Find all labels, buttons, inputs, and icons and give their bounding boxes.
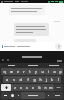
staticText: q — [3, 69, 6, 74]
staticText: p — [59, 69, 62, 74]
button[interactable] — [43, 63, 64, 68]
button[interactable] — [9, 5, 45, 15]
button[interactable]: d — [17, 76, 24, 83]
button[interactable]: t — [27, 68, 33, 75]
button[interactable]: q — [1, 68, 8, 75]
button[interactable]: w — [8, 68, 15, 75]
staticText: m — [49, 85, 53, 90]
button[interactable] — [22, 63, 43, 68]
button[interactable]: a — [3, 76, 10, 83]
button[interactable]: b — [36, 84, 42, 91]
staticText: v — [32, 85, 34, 90]
button[interactable]: l — [55, 76, 61, 83]
staticText: t — [29, 69, 31, 74]
button[interactable]: Space — [21, 92, 45, 99]
button[interactable]: u — [39, 68, 45, 75]
button[interactable]: m — [48, 84, 54, 91]
staticText: h — [39, 77, 42, 82]
button[interactable]: o — [51, 68, 57, 75]
staticText: u — [41, 69, 44, 74]
staticText: w — [10, 69, 13, 74]
staticText: d — [19, 77, 22, 82]
staticText: r — [23, 69, 25, 74]
button[interactable]: i — [45, 68, 51, 75]
staticText: o — [53, 69, 56, 74]
button[interactable]: Symbols — [1, 92, 9, 99]
button[interactable]: r — [21, 68, 27, 75]
button[interactable]: Enter — [51, 92, 63, 99]
button[interactable]: v — [30, 84, 36, 91]
button[interactable]: Backspace — [54, 84, 63, 91]
button[interactable]: p — [57, 68, 63, 75]
staticText: z — [14, 85, 16, 90]
staticText: e — [17, 69, 19, 74]
button[interactable]: Period — [45, 92, 51, 99]
button[interactable]: x — [18, 84, 24, 91]
staticText: y — [35, 69, 37, 74]
button[interactable] — [2, 45, 55, 48]
staticText: a — [6, 77, 8, 82]
staticText: s — [13, 77, 15, 82]
button[interactable]: Shift — [1, 84, 11, 91]
staticText: x — [20, 85, 22, 90]
button[interactable]: c — [24, 84, 30, 91]
button[interactable]: Comma — [15, 92, 21, 99]
staticText: l — [58, 77, 59, 82]
button[interactable]: k — [49, 76, 55, 83]
staticText: c — [26, 85, 28, 90]
button[interactable]: z — [11, 84, 18, 91]
staticText: i — [48, 69, 49, 74]
staticText: j — [46, 77, 47, 82]
button[interactable]: e — [15, 68, 21, 75]
button[interactable]: s — [10, 76, 17, 83]
staticText: b — [38, 85, 41, 90]
button[interactable]: h — [37, 76, 43, 83]
staticText: k — [51, 77, 53, 82]
button[interactable]: Emoji — [9, 92, 15, 99]
staticText: n — [44, 85, 47, 90]
button[interactable]: y — [33, 68, 39, 75]
staticText: g — [33, 77, 36, 82]
button[interactable] — [14, 23, 49, 36]
button[interactable]: g — [31, 76, 37, 83]
staticText: f — [27, 77, 29, 82]
button[interactable] — [0, 63, 22, 68]
button[interactable]: Send voice message — [55, 43, 62, 50]
button[interactable]: n — [42, 84, 48, 91]
button[interactable]: f — [24, 76, 31, 83]
button[interactable]: j — [43, 76, 49, 83]
